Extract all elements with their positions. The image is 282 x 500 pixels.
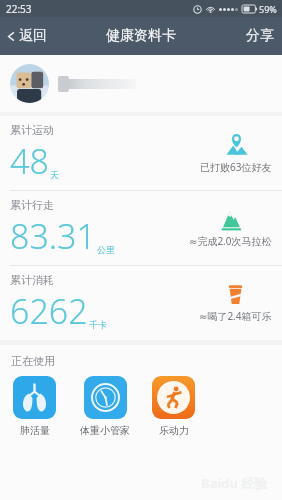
staticText: 千卡 (89, 319, 107, 330)
button[interactable]: 累计消耗 (0, 266, 282, 340)
staticText: 返回 (19, 27, 47, 45)
staticText: 健康资料卡 (106, 27, 176, 45)
staticText: 59% (259, 3, 277, 15)
staticText: ≈完成2.0次马拉松 (189, 234, 272, 248)
button[interactable]: 累计运动 (0, 116, 282, 190)
staticText: 累计运动 (10, 123, 54, 137)
staticText: 累计消耗 (10, 273, 54, 287)
staticText: 6262 (10, 288, 88, 334)
button[interactable]: 返回 (0, 21, 57, 51)
staticText: 乐动力 (159, 424, 189, 437)
staticText: 天 (50, 169, 59, 180)
staticText: 48 (10, 138, 49, 184)
button[interactable] (0, 55, 282, 112)
staticText: 公里 (97, 244, 115, 255)
staticText: ≈喝了2.4箱可乐 (199, 309, 272, 323)
staticText: 正在使用 (11, 354, 55, 368)
staticText: 22:53 (6, 2, 32, 16)
other: 体重小管家 (84, 376, 127, 419)
staticText: 分享 (246, 27, 274, 45)
staticText: 体重小管家 (80, 424, 130, 437)
staticText: 累计行走 (10, 198, 54, 212)
staticText: 83.31 (10, 213, 96, 259)
button[interactable]: 分享 (236, 21, 282, 51)
button[interactable]: 累计行走 (0, 191, 282, 265)
staticText: 肺活量 (20, 424, 50, 437)
button[interactable]: 乐动力 (150, 374, 197, 439)
staticText: Baidu 经验 (201, 474, 268, 492)
other: 乐动力 (152, 376, 195, 419)
button[interactable]: 肺活量 (11, 374, 58, 439)
button[interactable]: 体重小管家 (78, 374, 132, 439)
other: 肺活量 (13, 376, 56, 419)
staticText: 已打败63位好友 (200, 160, 272, 174)
